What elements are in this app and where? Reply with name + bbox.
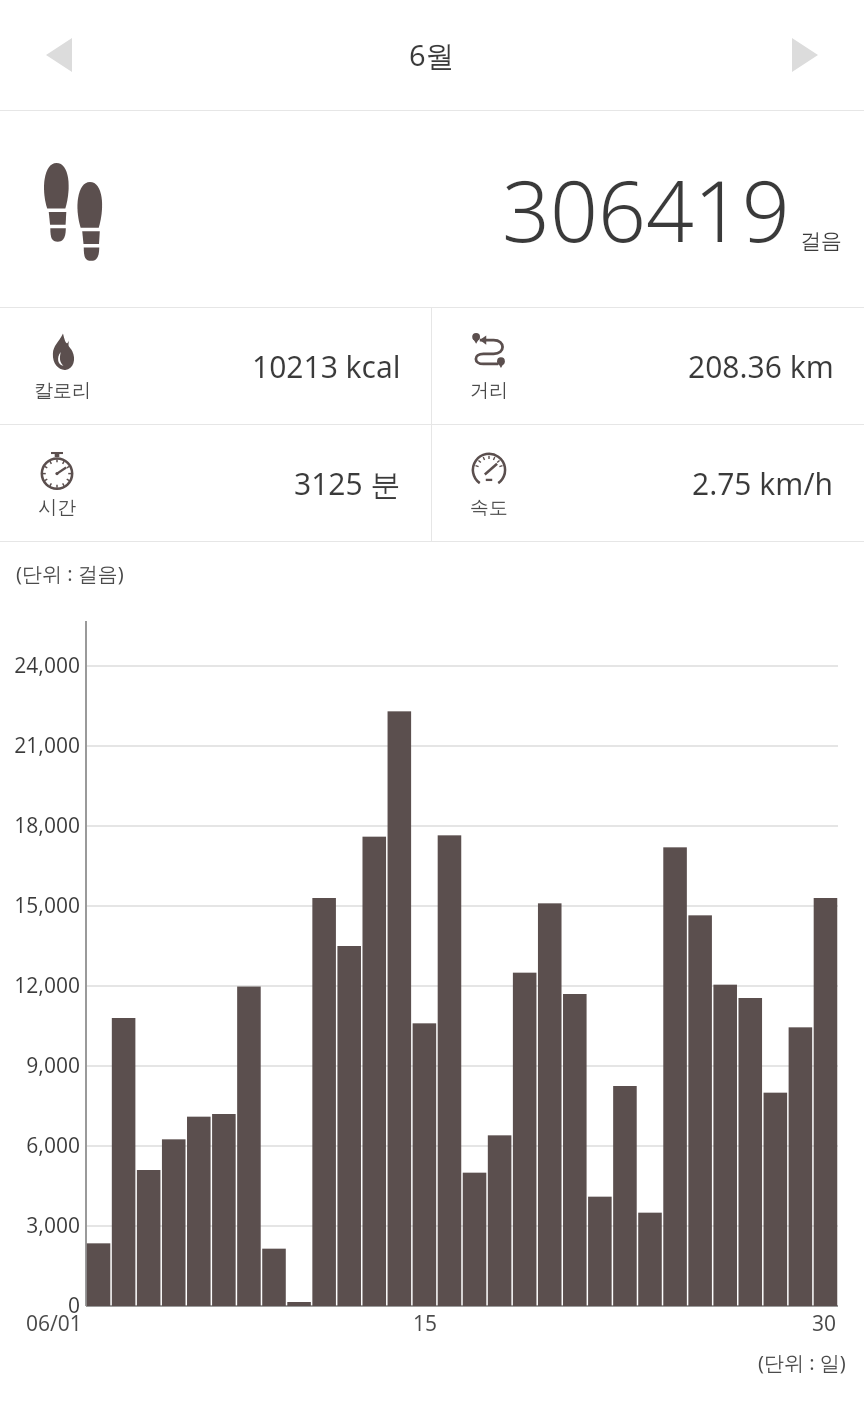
staticText: 9,000 bbox=[0, 1051, 80, 1080]
staticText: 6,000 bbox=[0, 1131, 80, 1160]
staticText: 06/01 bbox=[26, 1309, 82, 1338]
staticText: 0 bbox=[0, 1291, 80, 1320]
staticText: 15 bbox=[413, 1309, 438, 1338]
staticText: (단위 : 걸음) bbox=[16, 560, 124, 587]
staticText: 15,000 bbox=[0, 891, 80, 920]
button[interactable]: 거리 bbox=[432, 308, 864, 424]
staticText: 6월 bbox=[409, 35, 455, 75]
staticText: 208.36 km bbox=[688, 346, 834, 387]
staticText: 18,000 bbox=[0, 811, 80, 840]
staticText: 3,000 bbox=[0, 1211, 80, 1240]
staticText: 24,000 bbox=[0, 651, 80, 680]
staticText: 21,000 bbox=[0, 731, 80, 760]
staticText: 30 bbox=[812, 1309, 837, 1338]
button[interactable]: Previous month bbox=[22, 18, 96, 92]
staticText: 걸음 bbox=[800, 228, 842, 254]
button[interactable]: 시간 bbox=[0, 425, 431, 541]
button[interactable]: 306419 bbox=[0, 111, 864, 307]
staticText: 시간 bbox=[38, 496, 76, 520]
button[interactable]: 칼로리 bbox=[0, 308, 431, 424]
staticText: 3125 분 bbox=[294, 463, 401, 504]
staticText: 10213 kcal bbox=[252, 346, 401, 387]
staticText: 거리 bbox=[470, 379, 508, 403]
staticText: 12,000 bbox=[0, 971, 80, 1000]
staticText: 306419 bbox=[502, 152, 790, 266]
staticText: (단위 : 일) bbox=[758, 1349, 846, 1376]
button[interactable]: Next month bbox=[768, 18, 842, 92]
button[interactable]: 속도 bbox=[432, 425, 864, 541]
staticText: 칼로리 bbox=[34, 379, 91, 403]
staticText: 속도 bbox=[470, 496, 508, 520]
staticText: 2.75 km/h bbox=[692, 463, 834, 504]
